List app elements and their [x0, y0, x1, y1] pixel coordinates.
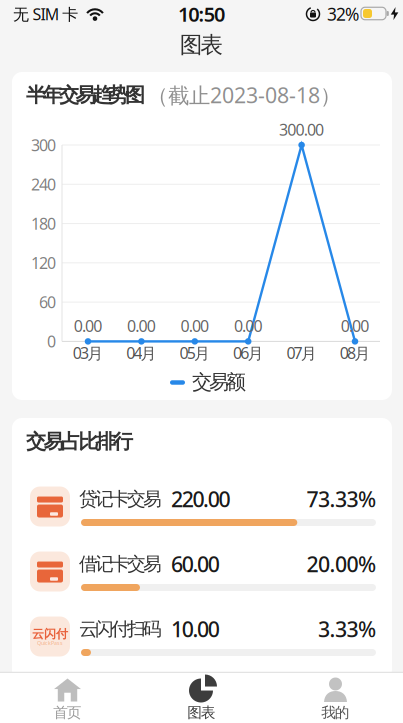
- staticText: 05月: [180, 342, 210, 363]
- staticText: 07月: [286, 342, 317, 363]
- button[interactable]: 我的: [290, 675, 380, 721]
- staticText: 20.00%: [306, 550, 376, 578]
- staticText: 10.00: [171, 615, 220, 643]
- staticText: 交易额: [192, 370, 246, 394]
- staticText: 云闪付扫码: [79, 617, 162, 640]
- staticText: 0.00: [74, 315, 102, 336]
- staticText: 0.00: [180, 315, 209, 336]
- staticText: 220.00: [171, 485, 230, 513]
- staticText: 180: [31, 213, 56, 234]
- staticText: 无 SIM 卡: [13, 3, 78, 25]
- button[interactable]: 图表: [156, 675, 246, 721]
- staticText: 10:50: [178, 1, 225, 27]
- staticText: 贷记卡交易: [79, 487, 162, 510]
- staticText: 0.00: [341, 315, 369, 336]
- staticText: 300.00: [279, 119, 324, 140]
- staticText: 0.00: [234, 315, 262, 336]
- staticText: 半年交易趋势图: [26, 83, 145, 107]
- staticText: 云闪付: [32, 627, 68, 641]
- staticText: 图表: [187, 703, 216, 721]
- staticText: 32%: [327, 2, 359, 25]
- staticText: 0: [47, 331, 56, 352]
- staticText: 240: [31, 174, 56, 195]
- staticText: 06月: [233, 342, 263, 363]
- staticText: 300: [31, 134, 56, 156]
- staticText: 60.00: [171, 550, 220, 578]
- staticText: 首页: [53, 703, 82, 721]
- staticText: 交易占比排行: [26, 429, 133, 454]
- staticText: 借记卡交易: [79, 552, 162, 575]
- staticText: （截止2023-08-18）: [147, 81, 341, 109]
- staticText: QuickPass: [37, 639, 63, 647]
- staticText: 04月: [126, 342, 157, 363]
- staticText: 73.33%: [306, 485, 376, 513]
- button[interactable]: 首页: [22, 675, 112, 721]
- staticText: 0.00: [127, 315, 156, 336]
- staticText: 08月: [340, 342, 370, 363]
- staticText: 60: [39, 291, 56, 313]
- staticText: 3.33%: [318, 615, 376, 643]
- staticText: 图表: [180, 31, 223, 59]
- staticText: 120: [31, 252, 56, 273]
- staticText: 03月: [73, 342, 103, 363]
- staticText: 我的: [321, 703, 350, 721]
